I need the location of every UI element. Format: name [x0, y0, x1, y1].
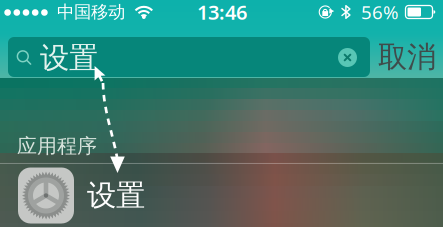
staticText: 中国移动 [57, 1, 125, 23]
staticText: 56% [361, 0, 399, 24]
staticText: 应用程序 [17, 134, 97, 158]
staticText: 设置 [40, 40, 98, 76]
button[interactable]: 设置 [0, 0, 443, 63]
staticText: 取消 [378, 39, 436, 75]
staticText: 设置 [87, 177, 145, 213]
staticText: 13:46 [197, 0, 247, 25]
button[interactable]: 取消 [0, 0, 62, 34]
button[interactable]: Clear search text [0, 0, 31, 31]
